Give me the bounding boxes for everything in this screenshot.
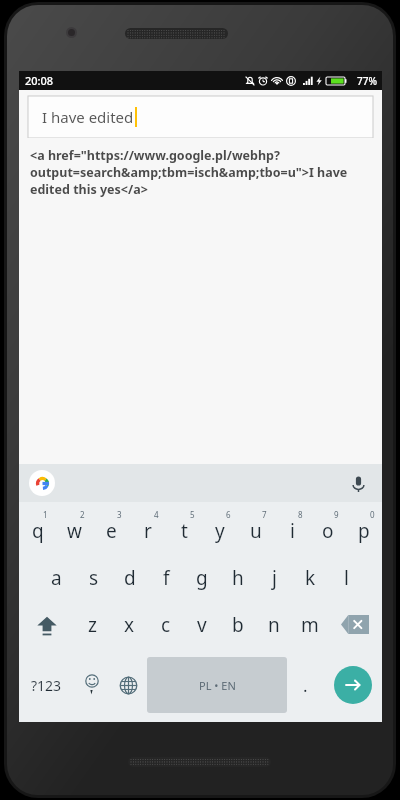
- staticText: j: [272, 565, 277, 591]
- button[interactable]: 8: [274, 502, 310, 554]
- staticText: l: [344, 565, 349, 591]
- button[interactable]: 9: [310, 502, 346, 554]
- button[interactable]: 5: [166, 502, 202, 554]
- staticText: 77%: [357, 74, 377, 88]
- button[interactable]: Shift: [19, 601, 74, 648]
- staticText: w: [67, 518, 82, 544]
- staticText: h: [232, 565, 244, 591]
- staticText: 3: [117, 509, 122, 520]
- staticText: .: [303, 674, 308, 697]
- staticText: d: [124, 565, 136, 591]
- staticText: 0: [370, 509, 375, 520]
- button[interactable]: b: [220, 601, 256, 648]
- staticText: 9: [334, 509, 339, 520]
- staticText: ?123: [31, 676, 62, 695]
- staticText: n: [268, 612, 280, 638]
- button[interactable]: m: [292, 601, 328, 648]
- staticText: <a href="https://www.google.pl/webhp?out…: [30, 147, 370, 198]
- button[interactable]: Emoji: [73, 648, 110, 722]
- staticText: u: [250, 518, 262, 544]
- button[interactable]: n: [256, 601, 292, 648]
- button[interactable]: k: [292, 554, 328, 601]
- button[interactable]: ?123: [19, 648, 73, 722]
- staticText: e: [106, 518, 117, 544]
- button[interactable]: 7: [238, 502, 274, 554]
- button[interactable]: g: [184, 554, 220, 601]
- button[interactable]: Enter: [334, 666, 372, 704]
- button[interactable]: PL • EN: [147, 657, 287, 713]
- staticText: 1: [43, 509, 48, 520]
- button[interactable]: h: [220, 554, 256, 601]
- staticText: c: [161, 612, 171, 638]
- button[interactable]: 4: [130, 502, 166, 554]
- button[interactable]: v: [184, 601, 220, 648]
- button[interactable]: Voice input: [344, 469, 372, 497]
- staticText: 5: [190, 509, 195, 520]
- staticText: 7: [262, 509, 267, 520]
- staticText: k: [305, 565, 316, 591]
- staticText: o: [322, 518, 334, 544]
- staticText: 20:08: [25, 73, 54, 88]
- button[interactable]: Change language: [110, 648, 147, 722]
- staticText: i: [290, 518, 295, 544]
- staticText: I have edited: [42, 107, 134, 127]
- staticText: m: [301, 612, 319, 638]
- button[interactable]: I have edited: [28, 96, 373, 138]
- button[interactable]: c: [148, 601, 184, 648]
- staticText: y: [215, 518, 225, 544]
- button[interactable]: z: [74, 601, 111, 648]
- button[interactable]: 0: [346, 502, 382, 554]
- button[interactable]: 6: [202, 502, 238, 554]
- staticText: 2: [80, 509, 85, 520]
- staticText: q: [32, 518, 44, 544]
- staticText: b: [232, 612, 244, 638]
- staticText: v: [197, 612, 207, 638]
- staticText: g: [196, 565, 208, 591]
- button[interactable]: Google: [29, 470, 55, 496]
- button[interactable]: f: [148, 554, 184, 601]
- staticText: 6: [226, 509, 231, 520]
- button[interactable]: j: [256, 554, 292, 601]
- button[interactable]: .: [287, 648, 324, 722]
- staticText: f: [163, 565, 170, 591]
- button[interactable]: a: [38, 554, 75, 601]
- staticText: x: [124, 612, 135, 638]
- staticText: 4: [154, 509, 159, 520]
- button[interactable]: 2: [56, 502, 93, 554]
- button[interactable]: s: [75, 554, 112, 601]
- staticText: p: [358, 518, 370, 544]
- staticText: r: [144, 518, 152, 544]
- staticText: a: [51, 565, 62, 591]
- button[interactable]: 1: [19, 502, 56, 554]
- staticText: 8: [298, 509, 303, 520]
- button[interactable]: x: [111, 601, 148, 648]
- staticText: t: [181, 518, 188, 544]
- staticText: s: [89, 565, 99, 591]
- staticText: PL • EN: [199, 678, 236, 693]
- button[interactable]: d: [112, 554, 148, 601]
- button[interactable]: l: [328, 554, 364, 601]
- button[interactable]: 3: [93, 502, 130, 554]
- staticText: z: [88, 612, 97, 638]
- button[interactable]: Backspace: [328, 601, 382, 648]
